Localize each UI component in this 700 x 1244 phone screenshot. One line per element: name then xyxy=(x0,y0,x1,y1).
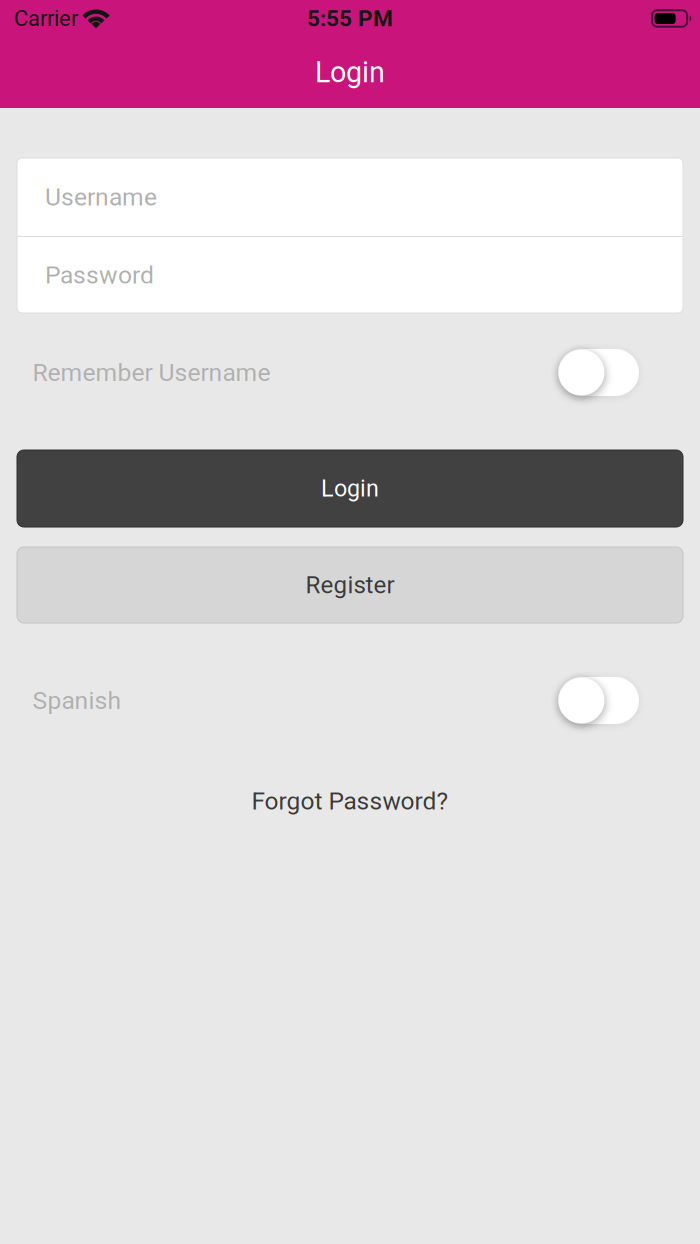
button[interactable]: Password xyxy=(17,237,683,313)
button[interactable]: Login xyxy=(17,450,683,527)
staticText: Remember Username xyxy=(32,358,270,387)
staticText: 5:55 PM xyxy=(307,5,393,32)
staticText: Login xyxy=(315,56,385,89)
button[interactable]: Username xyxy=(17,158,683,236)
staticText: Password xyxy=(45,260,154,289)
staticText: Register xyxy=(305,571,394,599)
staticText: Forgot Password? xyxy=(251,787,448,815)
button[interactable]: Spanish xyxy=(558,677,639,724)
staticText: Carrier xyxy=(14,6,78,31)
staticText: Spanish xyxy=(32,686,121,715)
button[interactable]: Register xyxy=(17,547,683,623)
staticText: Login xyxy=(321,475,379,502)
button[interactable]: Remember Username xyxy=(558,349,639,396)
button[interactable]: Forgot Password? xyxy=(239,786,460,816)
staticText: Username xyxy=(45,182,157,211)
